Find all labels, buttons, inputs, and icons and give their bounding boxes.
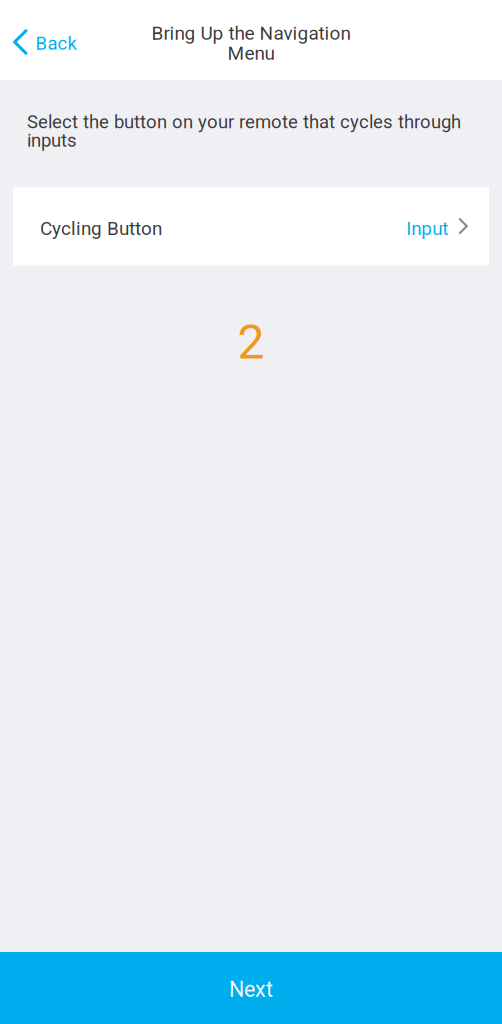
staticText: Back bbox=[36, 33, 77, 54]
staticText: Select the button on your remote that cy… bbox=[27, 111, 461, 151]
button[interactable]: Back bbox=[0, 0, 91, 80]
staticText: Cycling Button bbox=[40, 217, 162, 240]
staticText: Menu bbox=[227, 42, 274, 64]
button[interactable]: Cycling Button bbox=[13, 187, 489, 265]
staticText: Bring Up the Navigation bbox=[151, 22, 350, 44]
staticText: Next bbox=[229, 977, 273, 1002]
button[interactable]: Next bbox=[0, 952, 502, 1024]
staticText: Input bbox=[406, 217, 448, 240]
staticText: 2 bbox=[237, 314, 264, 370]
